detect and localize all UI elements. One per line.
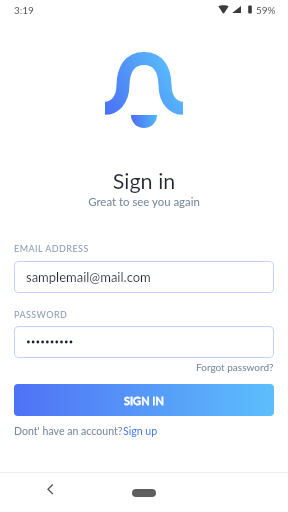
staticText: SIGN IN <box>124 394 164 407</box>
button[interactable]: Back <box>40 481 58 503</box>
button[interactable]: samplemail@mail.com <box>14 261 274 293</box>
staticText: Sign in <box>0 168 288 194</box>
staticText: samplemail@mail.com <box>26 269 151 285</box>
button[interactable]: SIGN IN <box>14 384 274 416</box>
staticText: EMAIL ADDRESS <box>14 243 89 254</box>
staticText: 59% <box>256 4 276 16</box>
staticText: Great to see you again <box>0 195 288 209</box>
button[interactable]: Sign up <box>123 425 158 438</box>
staticText: Forgot password? <box>196 361 274 373</box>
staticText: Sign up <box>123 425 158 438</box>
button[interactable] <box>14 326 274 358</box>
button[interactable]: Home <box>132 489 156 497</box>
button[interactable]: Forgot password? <box>196 361 274 373</box>
staticText: 3:19 <box>14 4 34 16</box>
staticText: Dont' have an account? <box>14 425 123 438</box>
staticText: PASSWORD <box>14 309 68 320</box>
